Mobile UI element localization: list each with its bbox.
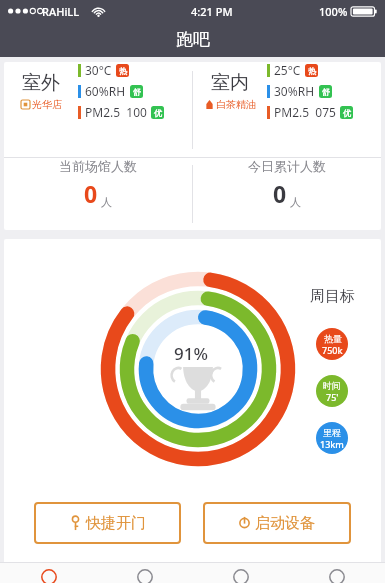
button[interactable]: 热量	[316, 328, 348, 360]
button[interactable]: 快捷开门	[34, 502, 181, 544]
staticText: 室外	[22, 71, 60, 95]
staticText: 60%RH	[85, 83, 126, 99]
staticText: 人	[101, 195, 112, 209]
button[interactable]: Navigation tab	[0, 564, 97, 582]
staticText: 优	[154, 108, 162, 118]
button[interactable]: Navigation tab	[193, 564, 289, 582]
staticText: 光华店	[32, 98, 62, 111]
staticText: 当前场馆人数	[59, 158, 137, 174]
staticText: 优	[343, 108, 351, 118]
button[interactable]: 室内	[193, 62, 381, 120]
staticText: 舒	[322, 87, 330, 97]
button[interactable]: 里程	[316, 422, 348, 454]
staticText: 今日累计人数	[248, 158, 326, 174]
button[interactable]: 今日累计人数	[193, 158, 381, 209]
staticText: 启动设备	[255, 514, 315, 533]
staticText: 里程	[323, 427, 341, 438]
staticText: 100%	[319, 4, 348, 19]
staticText: 0	[84, 178, 98, 209]
staticText: 4:21 PM	[191, 4, 233, 19]
staticText: 人	[290, 195, 301, 209]
staticText: 白茶精油	[216, 98, 256, 111]
button[interactable]: 时间	[316, 375, 348, 407]
staticText: 热量	[324, 333, 342, 344]
button[interactable]: 当前场馆人数	[4, 158, 192, 209]
staticText: 30%RH	[274, 83, 315, 99]
staticText: 25°C	[274, 62, 301, 78]
staticText: 750k	[322, 344, 343, 356]
staticText: 热	[119, 66, 127, 76]
staticText: 室内	[211, 71, 249, 95]
staticText: 13km	[320, 438, 344, 450]
staticText: 快捷开门	[86, 514, 146, 533]
staticText: 周目标	[310, 287, 355, 306]
staticText: 0	[273, 178, 287, 209]
staticText: 75'	[326, 391, 339, 403]
staticText: 30°C	[85, 62, 112, 78]
staticText: 时间	[323, 380, 341, 391]
button[interactable]: Navigation tab	[97, 564, 193, 582]
staticText: RAHiLL	[42, 4, 80, 19]
staticText: 91%	[174, 342, 208, 365]
staticText: 跑吧	[176, 29, 210, 50]
button[interactable]: 启动设备	[203, 502, 351, 544]
staticText: PM2.5 100	[85, 104, 147, 120]
staticText: 舒	[133, 87, 141, 97]
staticText: PM2.5 075	[274, 104, 336, 120]
staticText: 热	[308, 66, 316, 76]
button[interactable]: 室外	[4, 62, 192, 120]
button[interactable]: Navigation tab	[289, 564, 385, 582]
